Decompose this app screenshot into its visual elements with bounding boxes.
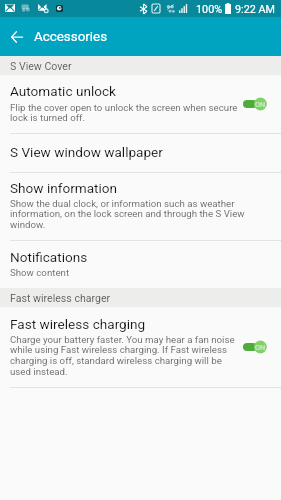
button[interactable]: Fast wireless charging xyxy=(0,307,281,387)
button[interactable]: Notifications xyxy=(0,241,281,288)
staticText: Notifications xyxy=(10,249,88,265)
staticText: Fast wireless charging xyxy=(10,316,146,332)
button[interactable]: S View window wallpaper xyxy=(0,134,281,172)
staticText: S View Cover xyxy=(10,60,72,72)
staticText: Automatic unlock xyxy=(10,83,116,99)
staticText: 9:22 AM xyxy=(235,3,275,16)
staticText: Show content xyxy=(10,267,70,278)
button[interactable]: Automatic unlock xyxy=(0,75,281,133)
staticText: Show information xyxy=(10,180,118,196)
staticText: Fast wireless charger xyxy=(10,292,111,304)
button[interactable]: Automatic unlock, on xyxy=(243,340,267,354)
staticText: Accessories xyxy=(34,29,108,45)
staticText: 100% xyxy=(196,3,223,16)
button[interactable]: Navigate up xyxy=(0,17,34,56)
staticText: Charge your battery faster. You may hear… xyxy=(10,334,235,378)
staticText: ON xyxy=(255,100,266,108)
staticText: S View window wallpaper xyxy=(10,144,163,160)
button[interactable]: Automatic unlock, on xyxy=(243,97,267,111)
button[interactable]: Show information xyxy=(0,173,281,240)
staticText: Show the dual clock, or information such… xyxy=(10,198,245,231)
staticText: Flip the cover open to unlock the screen… xyxy=(10,102,238,124)
staticText: ON xyxy=(255,343,266,351)
